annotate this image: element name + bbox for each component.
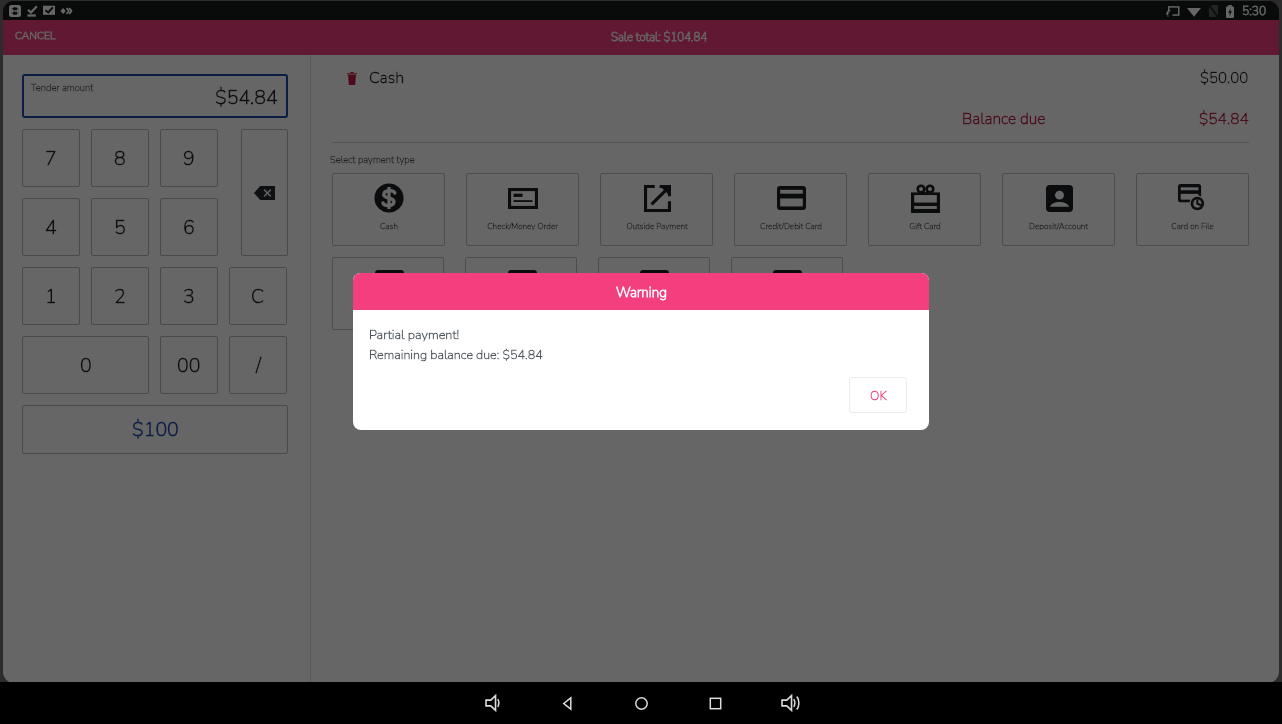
staticText: Card on File [1171,221,1214,232]
button[interactable]: / [229,336,287,394]
staticText: / [256,352,261,379]
staticText: 8 [114,145,126,172]
staticText: Select payment type [330,153,415,166]
button[interactable]: Gift Card [868,173,981,246]
staticText: Balance due [962,108,1046,129]
button[interactable]: Volume down [456,682,530,724]
staticText: 1 [45,283,57,310]
button[interactable]: 7 [22,129,80,187]
staticText: 3 [183,283,195,310]
button[interactable]: Deposit/Account [1002,173,1115,246]
button[interactable]: 6 [160,198,218,256]
button[interactable]: OK [849,377,907,413]
button[interactable]: Loyalty [598,257,710,330]
staticText: Other [777,305,798,316]
button[interactable]: 5 [91,198,149,256]
staticText: Check/Money Order [487,221,558,232]
button[interactable]: $100 [22,405,288,454]
button[interactable]: Outside Payment [600,173,713,246]
staticText: 00 [177,352,201,379]
button[interactable]: Other [731,257,843,330]
staticText: Remaining balance due: $54.84 [369,346,543,363]
button[interactable]: 9 [160,129,218,187]
button[interactable]: 3 [160,267,218,325]
staticText: CANCEL [15,28,56,42]
staticText: Outside Payment [626,221,688,232]
staticText: $54.84 [215,84,278,111]
staticText: C [251,283,265,310]
button[interactable]: 8 [91,129,149,187]
staticText: Partial payment! [369,326,460,343]
button[interactable]: 1 [22,267,80,325]
button[interactable]: House Account [332,257,444,330]
staticText: 5 [114,214,126,241]
button[interactable]: Backspace [241,129,288,256]
button[interactable]: Back [530,682,604,724]
staticText: Deposit/Account [1029,221,1088,232]
staticText: 4 [45,214,57,241]
staticText: $100 [132,416,179,443]
staticText: OK [870,387,887,404]
staticText: $50.00 [1200,68,1249,88]
staticText: Warning [616,283,667,301]
button[interactable]: CANCEL [3,20,68,50]
button[interactable]: Tender amount [22,74,288,118]
staticText: 9 [183,145,195,172]
button[interactable]: 4 [22,198,80,256]
staticText: 2 [114,283,126,310]
staticText: Sale total: $104.84 [611,29,708,45]
button[interactable]: Credit/Debit Card [734,173,847,246]
staticText: Tender amount [31,81,94,94]
button[interactable]: Recent apps [678,682,752,724]
staticText: Cash [369,67,405,89]
staticText: 7 [45,145,57,172]
staticText: Gift Card [909,221,941,232]
button[interactable]: 2 [91,267,149,325]
staticText: 6 [183,214,195,241]
button[interactable]: Home [604,682,678,724]
button[interactable]: Check/Money Order [466,173,579,246]
staticText: Loyalty [641,305,667,316]
button[interactable]: C [229,267,287,325]
staticText: Store Credit [500,305,543,316]
staticText: 0 [80,352,92,379]
button[interactable]: Remove payment [332,67,362,90]
button[interactable]: Volume up [752,682,826,724]
button[interactable]: Cash [332,173,445,246]
staticText: House Account [361,305,416,316]
button[interactable]: Card on File [1136,173,1249,246]
button[interactable]: 0 [22,336,149,394]
staticText: 5:30 [1242,3,1267,19]
button[interactable]: 00 [160,336,218,394]
staticText: Credit/Debit Card [760,221,822,232]
staticText: Cash [380,221,398,232]
button[interactable]: Store Credit [465,257,577,330]
staticText: $54.84 [1199,108,1249,129]
